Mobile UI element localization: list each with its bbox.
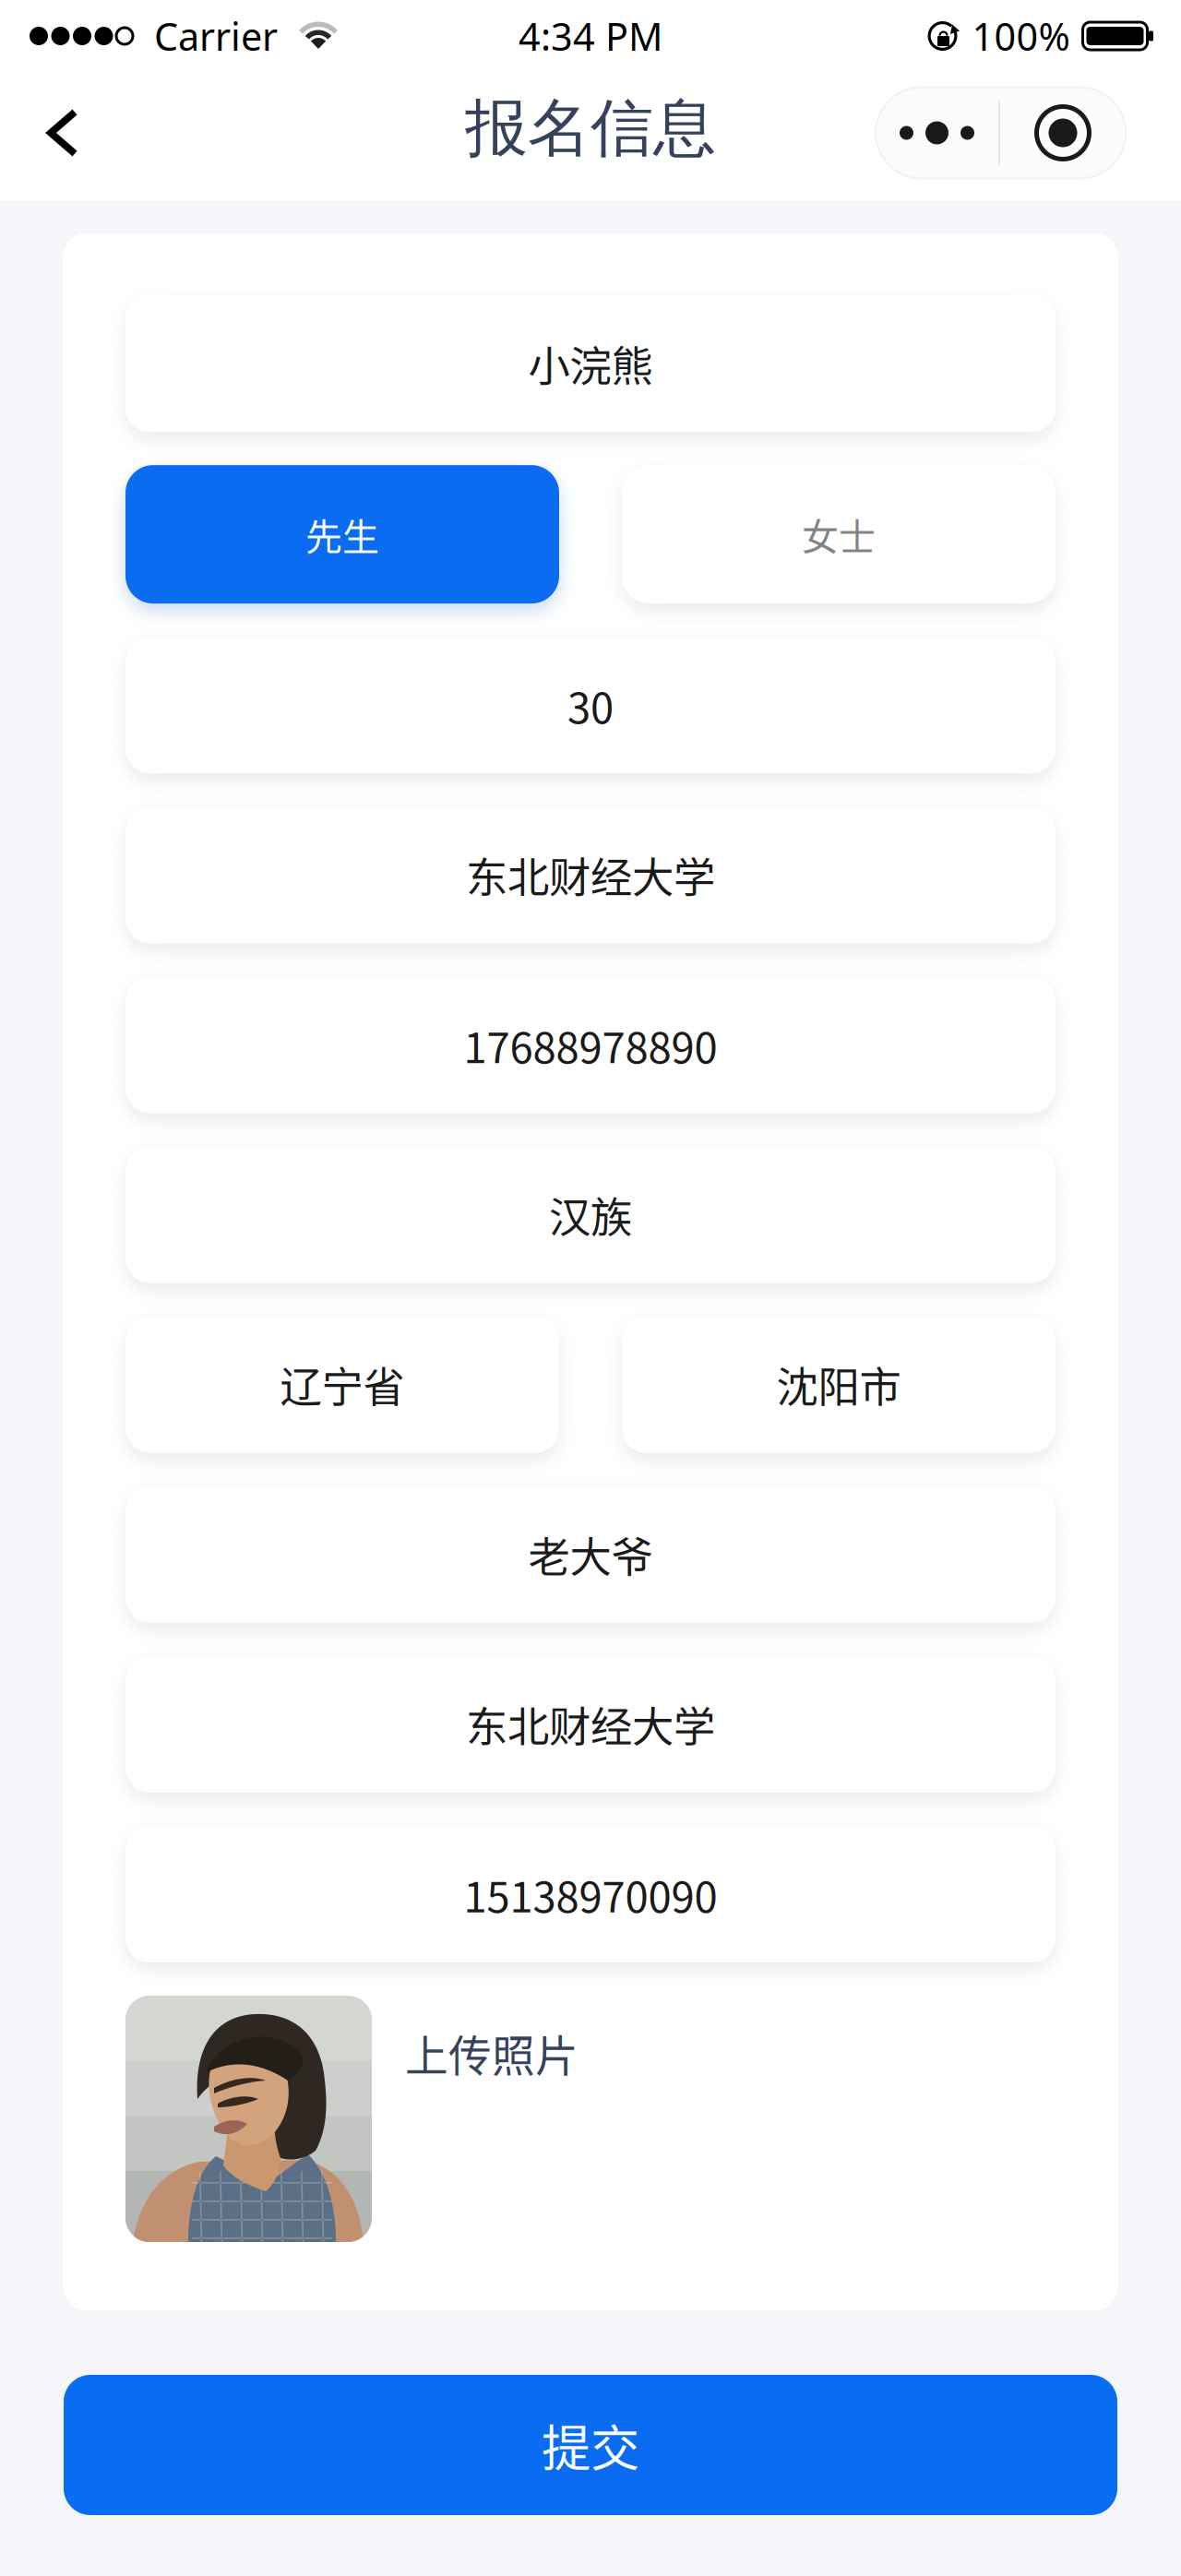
staticText: 汉族 xyxy=(549,1184,632,1245)
button[interactable]: 辽宁省 xyxy=(125,1316,559,1453)
staticText: 30 xyxy=(567,675,614,735)
staticText: 小浣熊 xyxy=(528,333,653,394)
staticText: 提交 xyxy=(542,2409,639,2481)
button[interactable]: 汉族 xyxy=(125,1146,1056,1283)
button[interactable]: More options xyxy=(876,87,1126,179)
staticText: 老大爷 xyxy=(528,1524,653,1585)
button[interactable]: 女士 xyxy=(622,465,1056,603)
staticText: 上传照片 xyxy=(405,2021,579,2084)
button[interactable]: 30 xyxy=(125,637,1056,773)
button[interactable]: 沈阳市 xyxy=(622,1316,1056,1453)
button[interactable]: 东北财经大学 xyxy=(125,1656,1056,1792)
staticText: 4:34 PM xyxy=(519,11,662,61)
button[interactable]: 小浣熊 xyxy=(125,295,1056,432)
staticText: 女士 xyxy=(802,508,876,561)
staticText: 15138970090 xyxy=(464,1864,717,1924)
button[interactable]: 提交 xyxy=(64,2375,1117,2515)
staticText: 100% xyxy=(972,11,1070,61)
button[interactable]: 15138970090 xyxy=(125,1826,1056,1962)
button[interactable]: Uploaded photo xyxy=(125,1996,372,2242)
staticText: 东北财经大学 xyxy=(466,845,715,905)
button[interactable]: 老大爷 xyxy=(125,1486,1056,1623)
staticText: 东北财经大学 xyxy=(466,1694,715,1754)
staticText: 先生 xyxy=(305,508,379,561)
button[interactable]: 先生 xyxy=(125,465,559,603)
staticText: 沈阳市 xyxy=(776,1354,901,1415)
staticText: 辽宁省 xyxy=(280,1354,405,1415)
staticText: 报名信息 xyxy=(465,89,716,168)
button[interactable]: 17688978890 xyxy=(125,977,1056,1113)
button[interactable]: 东北财经大学 xyxy=(125,807,1056,943)
staticText: Carrier xyxy=(154,11,278,61)
staticText: 17688978890 xyxy=(464,1015,717,1075)
button[interactable]: Back xyxy=(18,86,107,180)
